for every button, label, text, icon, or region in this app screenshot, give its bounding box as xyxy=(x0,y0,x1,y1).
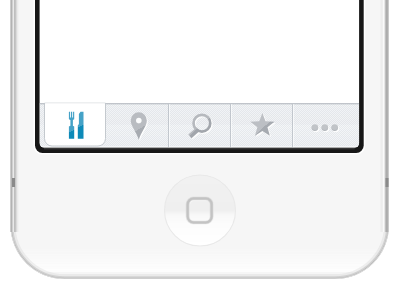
button[interactable]: Search xyxy=(167,103,231,147)
button[interactable]: Home xyxy=(165,175,235,245)
button[interactable]: Favourites xyxy=(231,103,295,147)
button[interactable]: Map xyxy=(104,103,168,147)
button[interactable]: Restaurants xyxy=(40,103,104,147)
button[interactable]: More xyxy=(295,103,359,147)
